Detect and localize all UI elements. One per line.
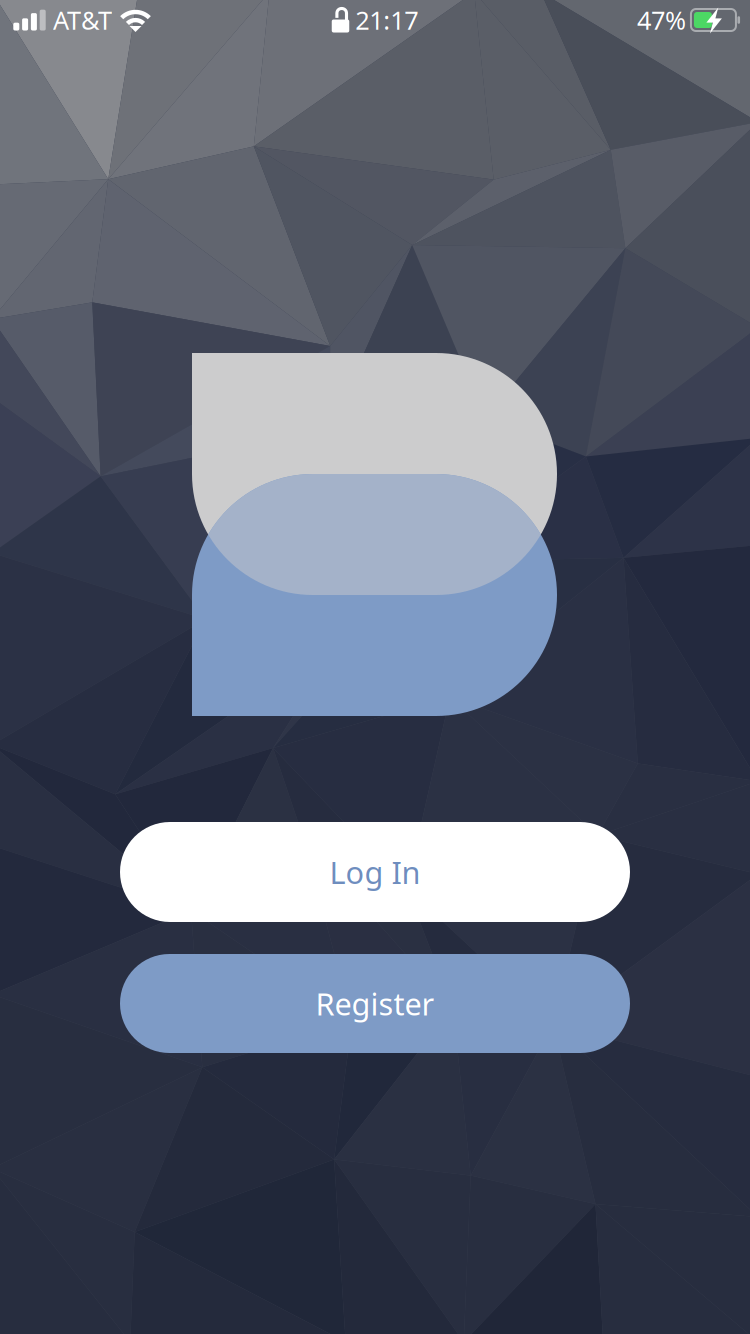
button[interactable]: Log In [120,822,630,922]
staticText: AT&T [53,3,112,37]
staticText: Log In [329,852,420,892]
button[interactable]: Register [120,954,630,1053]
staticText: 47% [637,3,686,37]
staticText: Register [315,983,434,1024]
staticText: 21:17 [355,3,418,37]
